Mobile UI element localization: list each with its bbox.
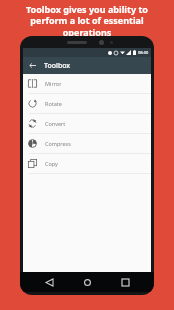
staticText: 08:00 — [138, 50, 149, 55]
button[interactable]: Convert — [23, 114, 151, 133]
staticText: Copy — [45, 160, 58, 167]
staticText: Rotate — [45, 100, 62, 107]
staticText: Compress — [45, 140, 71, 147]
button[interactable]: Recents — [116, 273, 134, 291]
button[interactable]: Home — [78, 273, 96, 291]
button[interactable]: Mirror — [23, 74, 151, 93]
button[interactable]: Back — [40, 273, 58, 291]
staticText: Toolbox gives you ability to perform a l… — [0, 3, 174, 39]
button[interactable]: Compress — [23, 134, 151, 153]
staticText: Convert — [45, 120, 66, 127]
button[interactable]: Rotate — [23, 94, 151, 113]
button[interactable]: Copy — [23, 154, 151, 173]
staticText: Toolbox — [44, 61, 71, 71]
staticText: Mirror — [45, 80, 62, 87]
button[interactable]: Navigate up — [26, 59, 39, 72]
